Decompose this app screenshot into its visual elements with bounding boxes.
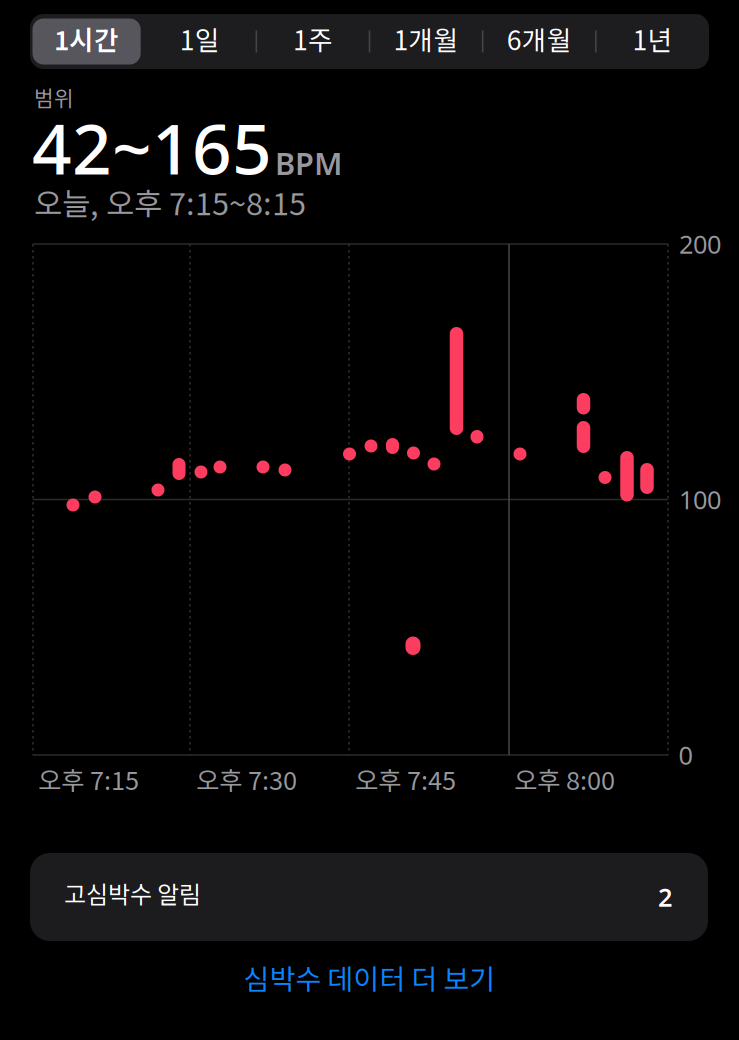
staticText: 42~165	[32, 101, 272, 194]
staticText: 1일	[180, 19, 220, 58]
button[interactable]: 1일	[143, 14, 256, 69]
button[interactable]: 1주	[256, 14, 369, 69]
staticText: 0	[678, 738, 692, 772]
staticText: 오후 7:15	[38, 761, 139, 797]
staticText: 100	[679, 483, 721, 516]
staticText: 1개월	[394, 19, 459, 58]
staticText: BPM	[275, 143, 342, 183]
button[interactable]: 1시간	[30, 14, 143, 69]
staticText: 오후 7:30	[196, 761, 297, 797]
staticText: 고심박수 알림	[64, 876, 201, 910]
staticText: 1시간	[54, 19, 119, 58]
staticText: 200	[679, 227, 721, 261]
staticText: 1주	[293, 19, 333, 58]
staticText: 1년	[632, 19, 672, 58]
staticText: 심박수 데이터 더 보기	[243, 957, 495, 998]
button[interactable]: 1개월	[369, 14, 483, 69]
button[interactable]: 1년	[596, 14, 709, 69]
button[interactable]: 심박수 데이터 더 보기	[243, 957, 495, 998]
staticText: 6개월	[507, 19, 572, 58]
staticText: 오후 8:00	[514, 761, 615, 797]
staticText: 2	[658, 880, 672, 914]
button[interactable]: 고심박수 알림	[30, 853, 708, 941]
staticText: 오늘, 오후 7:15~8:15	[34, 180, 306, 224]
staticText: 범위	[34, 82, 74, 112]
staticText: 오후 7:45	[355, 761, 456, 797]
button[interactable]: 6개월	[483, 14, 596, 69]
